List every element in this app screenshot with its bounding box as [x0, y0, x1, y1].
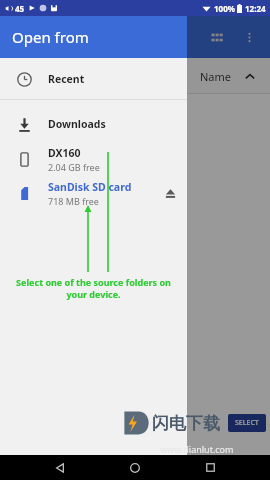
staticText: Name	[200, 69, 232, 84]
button[interactable]: DX160	[0, 142, 187, 176]
button[interactable]: More options	[234, 22, 264, 52]
button[interactable]: SELECT	[228, 414, 266, 432]
staticText: Open from	[12, 27, 89, 47]
staticText: 718 MB free	[48, 195, 99, 207]
button[interactable]: Back	[45, 455, 75, 480]
staticText: Recent	[48, 72, 85, 86]
staticText: 12:24	[245, 3, 266, 14]
staticText: Downloads	[48, 117, 106, 131]
staticText: www.dianlut.com	[160, 443, 234, 455]
button[interactable]: Grid view	[200, 20, 234, 54]
button[interactable]: Recent	[0, 61, 187, 97]
staticText: 45	[15, 3, 25, 14]
staticText: SELECT	[235, 418, 259, 428]
staticText: DX160	[48, 146, 81, 160]
staticText: 闪电下载	[152, 413, 220, 434]
button[interactable]: Downloads	[0, 106, 187, 142]
button[interactable]: Recents	[195, 455, 225, 480]
staticText: SanDisk SD card	[48, 180, 132, 194]
staticText: 2.04 GB free	[48, 161, 100, 173]
button[interactable]: Home	[120, 455, 150, 480]
button[interactable]: SanDisk SD card	[0, 176, 187, 210]
staticText: 100%	[214, 3, 235, 14]
button[interactable]: Name	[200, 69, 256, 84]
staticText: Select one of the source folders on your…	[16, 276, 171, 300]
